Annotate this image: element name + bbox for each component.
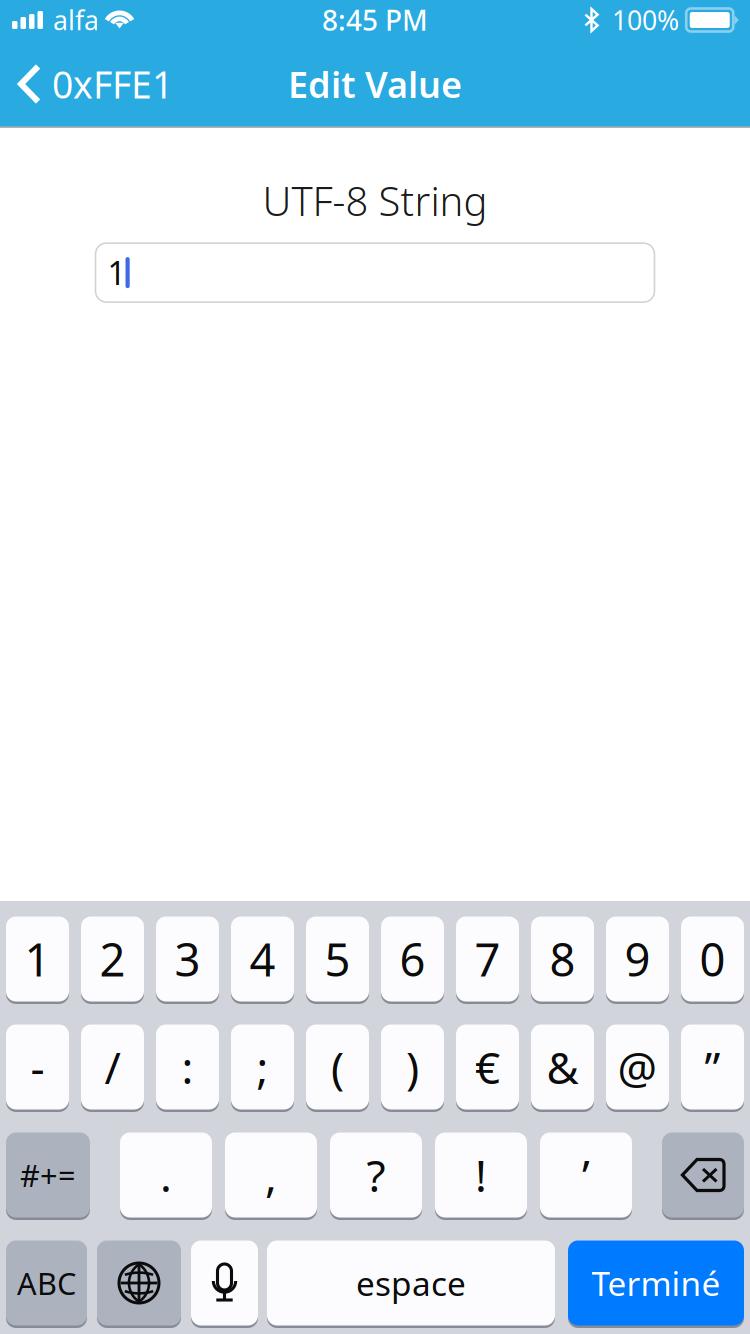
staticText: alfa [53, 2, 99, 38]
staticText: UTF-8 String [262, 174, 487, 227]
staticText: Terminé [591, 1261, 720, 1305]
staticText: #+= [20, 1155, 76, 1195]
staticText: 1 [107, 251, 125, 294]
staticText: 1 [24, 929, 50, 989]
button[interactable]: - [6, 1023, 69, 1111]
button[interactable]: . [120, 1131, 212, 1219]
staticText: ’ [582, 1146, 590, 1204]
button[interactable]: € [456, 1023, 519, 1111]
button[interactable]: 6 [381, 915, 444, 1003]
button[interactable]: Terminé [568, 1239, 744, 1327]
staticText: . [160, 1146, 172, 1204]
button[interactable]: 1 [95, 243, 654, 302]
staticText: ? [366, 1146, 385, 1204]
button[interactable]: , [225, 1131, 317, 1219]
button[interactable]: ) [381, 1023, 444, 1111]
button[interactable]: ’ [540, 1131, 632, 1219]
staticText: Edit Value [288, 60, 462, 108]
staticText: - [30, 1038, 44, 1096]
staticText: ) [406, 1038, 419, 1096]
button[interactable]: 3 [156, 915, 219, 1003]
staticText: 6 [399, 929, 425, 989]
staticText: 2 [99, 929, 125, 989]
button[interactable]: ! [435, 1131, 527, 1219]
staticText: ( [331, 1038, 344, 1096]
button[interactable]: ? [330, 1131, 422, 1219]
staticText: espace [356, 1261, 466, 1305]
staticText: 0 [699, 929, 725, 989]
button[interactable]: & [531, 1023, 594, 1111]
staticText: ABC [17, 1263, 76, 1303]
button[interactable]: : [156, 1023, 219, 1111]
staticText: ” [704, 1038, 720, 1096]
button[interactable]: Next keyboard [97, 1239, 181, 1327]
button[interactable]: / [81, 1023, 144, 1111]
button[interactable]: #+= [6, 1131, 90, 1219]
staticText: € [475, 1038, 500, 1096]
button[interactable]: ; [231, 1023, 294, 1111]
button[interactable]: ( [306, 1023, 369, 1111]
button[interactable]: ” [681, 1023, 744, 1111]
button[interactable]: 4 [231, 915, 294, 1003]
staticText: 3 [174, 929, 200, 989]
staticText: 4 [249, 929, 275, 989]
button[interactable]: espace [267, 1239, 555, 1327]
button[interactable]: Dictation [191, 1239, 258, 1327]
staticText: 100% [612, 2, 679, 38]
staticText: @ [617, 1038, 657, 1096]
staticText: 9 [624, 929, 650, 989]
staticText: ! [475, 1146, 487, 1204]
staticText: 8 [549, 929, 575, 989]
staticText: 8:45 PM [322, 1, 428, 39]
staticText: 7 [474, 929, 500, 989]
button[interactable]: 0 [681, 915, 744, 1003]
staticText: : [181, 1038, 193, 1096]
button[interactable]: 1 [6, 915, 69, 1003]
staticText: 0xFFE1 [52, 59, 173, 109]
staticText: / [104, 1038, 120, 1096]
button[interactable]: 8 [531, 915, 594, 1003]
button[interactable]: 0xFFE1 [0, 40, 185, 128]
button[interactable]: 7 [456, 915, 519, 1003]
button[interactable]: @ [606, 1023, 669, 1111]
button[interactable]: Delete [662, 1131, 744, 1219]
staticText: & [546, 1038, 578, 1096]
staticText: 5 [324, 929, 350, 989]
staticText: , [265, 1146, 277, 1204]
button[interactable]: 9 [606, 915, 669, 1003]
button[interactable]: 2 [81, 915, 144, 1003]
staticText: ; [256, 1038, 268, 1096]
button[interactable]: 5 [306, 915, 369, 1003]
button[interactable]: ABC [6, 1239, 87, 1327]
